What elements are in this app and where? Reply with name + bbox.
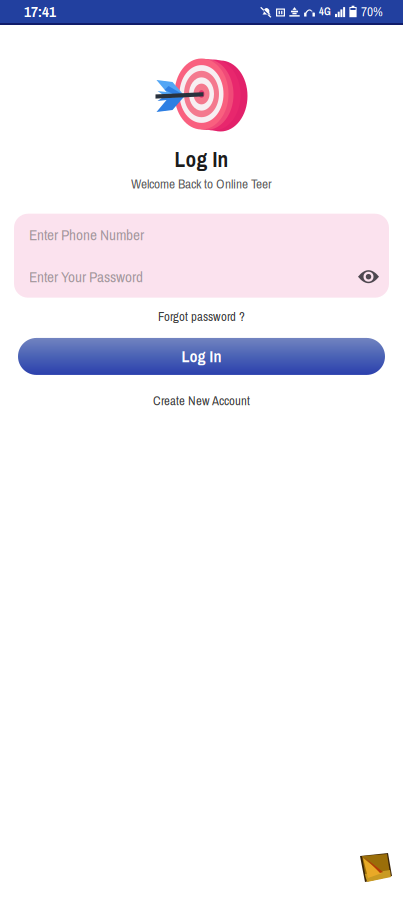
staticText: Create New Account bbox=[153, 392, 250, 409]
button[interactable]: Enter Phone Number bbox=[14, 214, 389, 256]
staticText: 4G bbox=[319, 4, 331, 19]
staticText: Enter Phone Number bbox=[29, 224, 144, 245]
staticText: 70% bbox=[361, 2, 383, 20]
staticText: 17:41 bbox=[24, 1, 56, 22]
button[interactable]: Enter Your Password bbox=[14, 256, 389, 298]
button[interactable]: Create New Account bbox=[145, 388, 258, 413]
staticText: Welcome Back to Online Teer bbox=[131, 175, 272, 193]
staticText: Log In bbox=[174, 145, 228, 174]
button[interactable]: Log In bbox=[18, 338, 385, 375]
button[interactable]: Forgot password ? bbox=[150, 304, 253, 329]
staticText: Forgot password ? bbox=[158, 308, 245, 325]
staticText: Log In bbox=[181, 346, 221, 367]
staticText: Enter Your Password bbox=[29, 266, 143, 287]
